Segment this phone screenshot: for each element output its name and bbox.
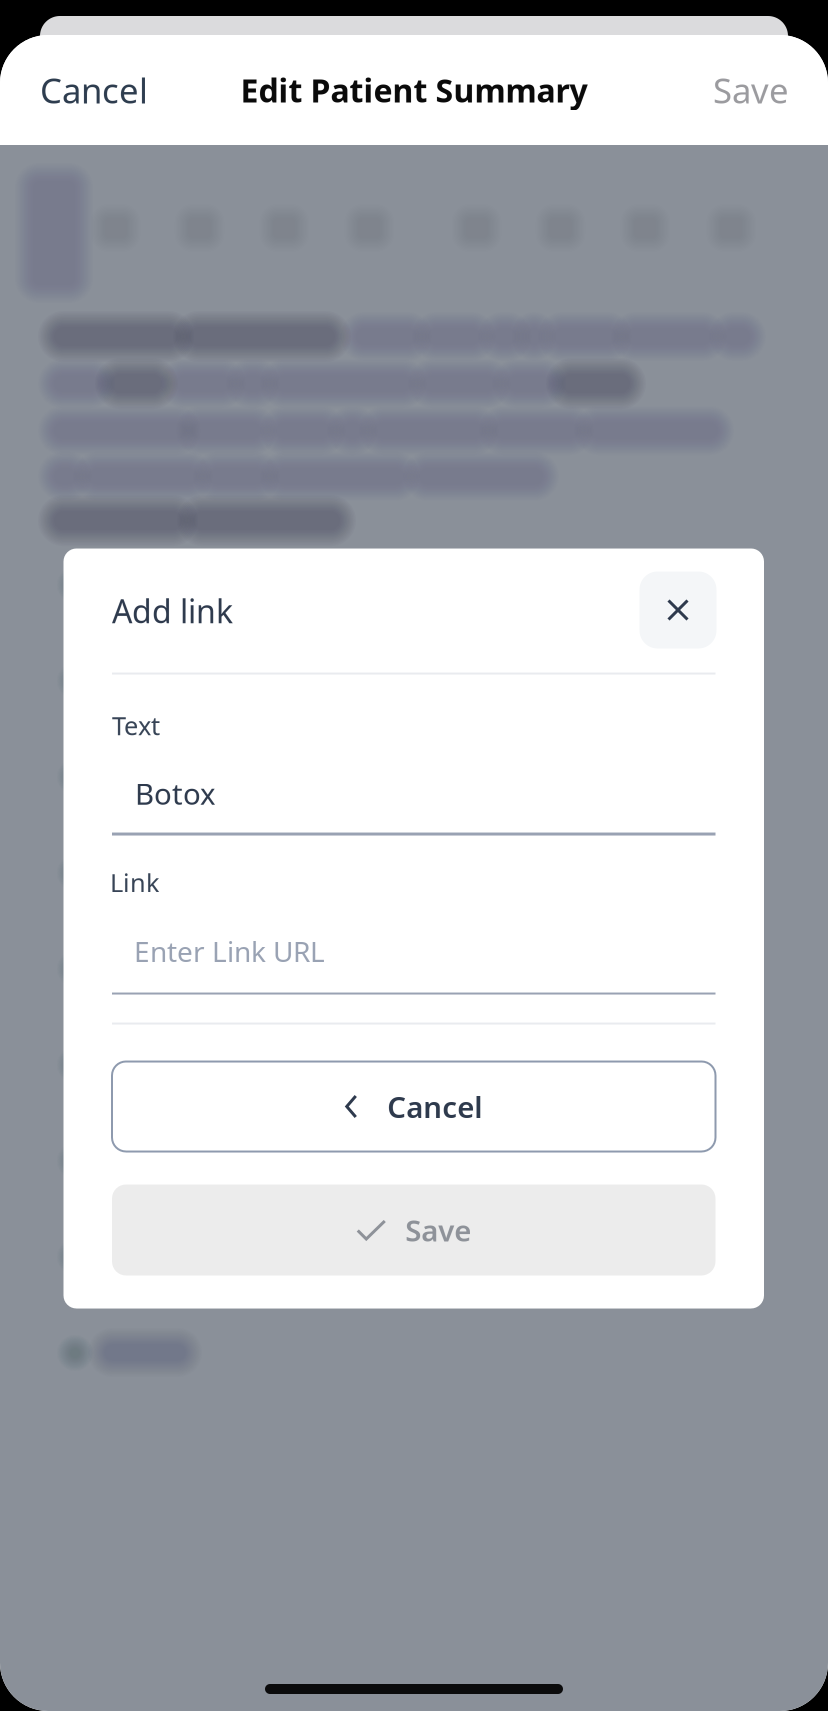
staticText: Botox xyxy=(135,774,216,813)
staticText: Save xyxy=(405,1210,471,1249)
staticText: Save xyxy=(713,67,789,113)
button[interactable]: Close xyxy=(639,571,716,648)
button[interactable]: Cancel xyxy=(112,1061,715,1151)
staticText: Edit Patient Summary xyxy=(240,69,587,111)
staticText: Text xyxy=(112,708,160,742)
button[interactable]: Save xyxy=(112,1184,715,1275)
button[interactable]: Edit Patient Summary xyxy=(0,35,828,145)
staticText: Enter Link URL xyxy=(134,932,325,970)
staticText: Cancel xyxy=(40,67,148,113)
button[interactable]: Save xyxy=(0,35,789,145)
staticText: Cancel xyxy=(387,1087,482,1126)
staticText: Add link xyxy=(112,589,233,632)
button[interactable]: Cancel xyxy=(0,35,188,145)
staticText: Link xyxy=(110,865,160,899)
